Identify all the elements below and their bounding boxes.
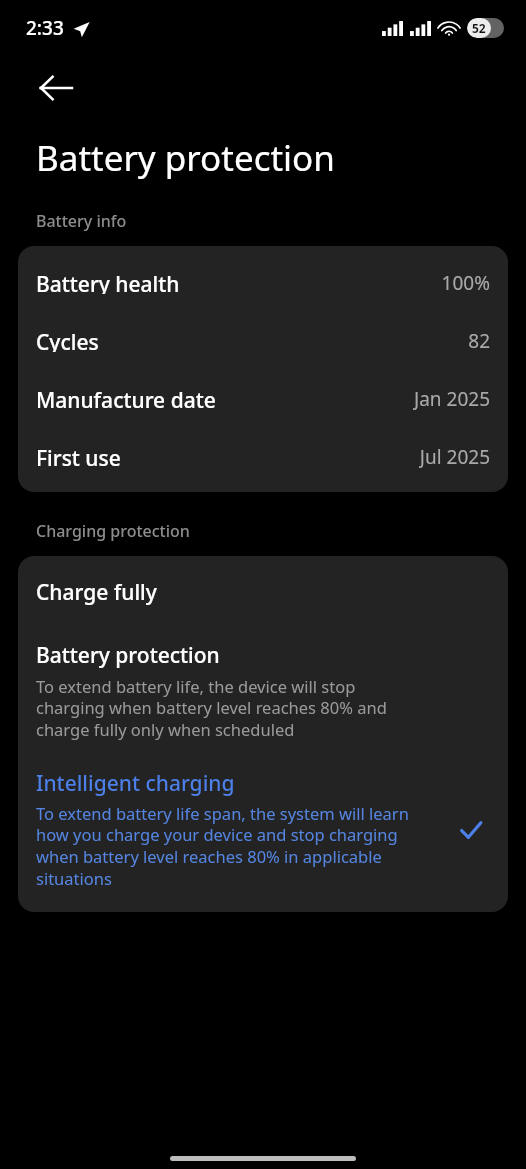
staticText: First use [36,444,121,468]
button[interactable]: Manufacture date [18,369,508,427]
staticText: Intelligent charging [36,769,235,798]
staticText: Manufacture date [36,386,216,410]
staticText: Battery health [36,270,180,294]
staticText: 100% [441,270,490,294]
staticText: Battery protection [36,641,220,670]
button[interactable]: Charge fully [18,556,508,627]
button[interactable]: Cycles [18,311,508,369]
staticText: Jul 2025 [419,444,490,468]
staticText: Battery info [36,210,127,232]
staticText: 2:33 [26,15,64,41]
staticText: Jan 2025 [413,386,490,410]
staticText: To extend battery life, the device will … [36,675,398,741]
staticText: Battery protection [36,134,335,182]
staticText: Charging protection [36,520,190,542]
staticText: 82 [468,328,490,352]
button[interactable]: Back [22,56,90,124]
button[interactable]: Battery protection [18,627,508,755]
staticText: Charge fully [36,578,157,607]
button[interactable]: First use [18,427,508,492]
staticText: Cycles [36,328,99,352]
button[interactable]: Intelligent charging [18,755,508,912]
staticText: 52 [472,20,486,36]
button[interactable]: Battery health [18,246,508,311]
staticText: To extend battery life span, the system … [36,802,442,890]
